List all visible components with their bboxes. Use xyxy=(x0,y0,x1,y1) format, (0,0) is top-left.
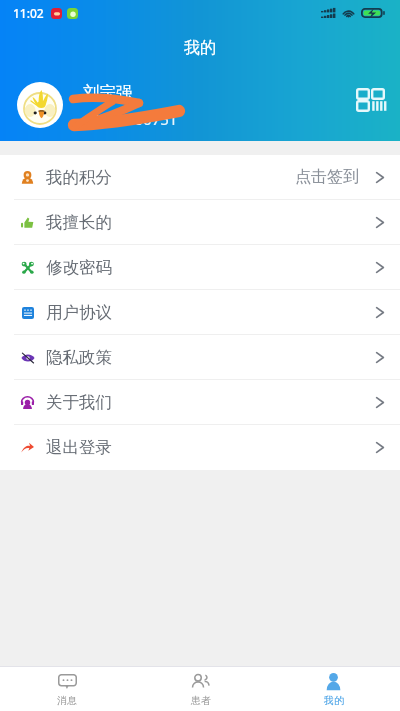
button[interactable]: 隐私政策 xyxy=(0,335,400,380)
staticText: 我的积分 xyxy=(46,167,112,188)
button[interactable]: 我的积分 xyxy=(0,155,400,200)
staticText: 消息 xyxy=(57,694,77,707)
button[interactable]: 患者 xyxy=(134,667,267,711)
button[interactable]: 我的 xyxy=(267,667,400,711)
button[interactable]: 关于我们 xyxy=(0,380,400,425)
button[interactable]: 用户协议 xyxy=(0,290,400,335)
staticText: 修改密码 xyxy=(46,257,112,278)
button[interactable]: 修改密码 xyxy=(0,245,400,290)
staticText: 关于我们 xyxy=(46,392,112,413)
staticText: 我的 xyxy=(184,38,216,58)
staticText: 我的 xyxy=(324,694,344,707)
staticText: 用户协议 xyxy=(46,302,112,323)
staticText: 点击签到 xyxy=(295,167,359,187)
button[interactable]: 刘宗强 xyxy=(0,76,400,134)
staticText: 退出登录 xyxy=(46,437,112,458)
staticText: 13800000751 xyxy=(83,109,178,129)
staticText: 11:02 xyxy=(13,5,44,21)
staticText: 患者 xyxy=(191,694,211,707)
button[interactable]: Scan QR code xyxy=(350,80,390,120)
button[interactable]: 我擅长的 xyxy=(0,200,400,245)
staticText: 刘宗强 xyxy=(83,82,133,103)
button[interactable]: 消息 xyxy=(0,667,134,711)
button[interactable]: 退出登录 xyxy=(0,425,400,470)
staticText: 隐私政策 xyxy=(46,347,112,368)
staticText: 我擅长的 xyxy=(46,212,112,233)
